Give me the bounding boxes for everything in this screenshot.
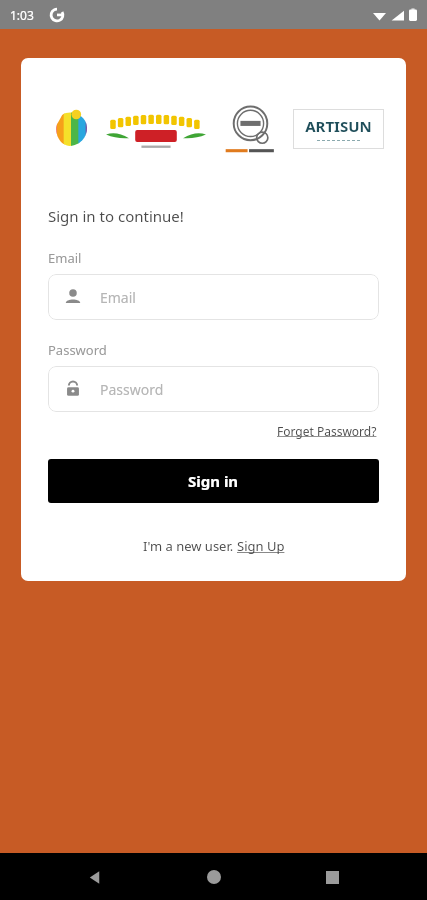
button[interactable]: Sign Up bbox=[237, 537, 285, 555]
button[interactable]: Email bbox=[48, 274, 379, 320]
button[interactable]: Password bbox=[48, 366, 379, 412]
button[interactable]: Recent apps bbox=[309, 854, 355, 900]
button[interactable]: Forget Password? bbox=[275, 421, 379, 441]
staticText: ARTISUN bbox=[305, 116, 372, 136]
button[interactable]: Sign in bbox=[48, 459, 379, 503]
staticText: Email bbox=[100, 288, 136, 307]
button[interactable]: Back bbox=[72, 854, 118, 900]
staticText: 1:03 bbox=[10, 7, 34, 23]
staticText: Sign in to continue! bbox=[48, 206, 184, 226]
staticText: Email bbox=[48, 249, 82, 267]
staticText: Password bbox=[100, 380, 164, 399]
staticText: Password bbox=[48, 341, 107, 359]
button[interactable]: Home bbox=[191, 854, 237, 900]
staticText: Sign in bbox=[188, 471, 239, 491]
staticText: I'm a new user. bbox=[143, 537, 237, 555]
